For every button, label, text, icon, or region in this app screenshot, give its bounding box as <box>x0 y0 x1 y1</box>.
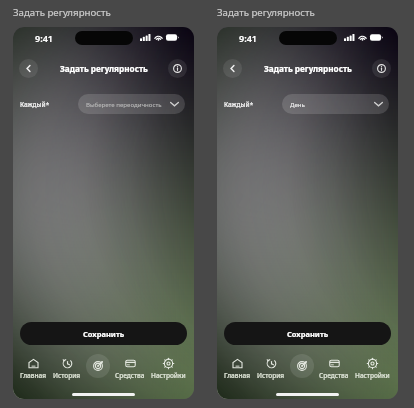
staticText: Средства <box>319 371 349 380</box>
button[interactable]: Главная <box>217 357 258 382</box>
staticText: Каждый* <box>20 100 50 109</box>
button[interactable]: Back <box>223 59 242 78</box>
staticText: Средства <box>115 371 145 380</box>
staticText: 9:41 <box>239 32 257 44</box>
button[interactable]: Сохранить <box>224 322 391 345</box>
staticText: День <box>290 100 305 108</box>
staticText: 9:41 <box>35 32 53 44</box>
staticText: Задать регулярность <box>217 6 315 19</box>
staticText: Задать регулярность <box>60 63 148 74</box>
staticText: Главная <box>20 371 47 380</box>
button[interactable]: Средства <box>313 357 355 382</box>
staticText: Главная <box>224 371 251 380</box>
button[interactable]: Goals <box>281 357 323 382</box>
button[interactable]: День <box>282 94 389 114</box>
button[interactable]: Настройки <box>351 357 393 382</box>
staticText: Выберете переодичность <box>86 100 162 108</box>
staticText: Каждый* <box>224 100 254 109</box>
staticText: Сохранить <box>287 329 329 339</box>
button[interactable]: Главная <box>13 357 54 382</box>
staticText: История <box>257 371 285 380</box>
staticText: Настройки <box>151 371 186 380</box>
staticText: История <box>53 371 81 380</box>
button[interactable]: Средства <box>109 357 151 382</box>
button[interactable]: Выберете переодичность <box>78 94 185 114</box>
button[interactable]: Information <box>372 59 391 78</box>
staticText: Настройки <box>355 371 390 380</box>
staticText: Сохранить <box>83 329 125 339</box>
button[interactable]: Back <box>19 59 38 78</box>
staticText: Задать регулярность <box>13 6 111 19</box>
button[interactable]: Information <box>168 59 187 78</box>
button[interactable]: История <box>46 357 88 382</box>
button[interactable]: Goals <box>77 357 119 382</box>
button[interactable]: История <box>250 357 292 382</box>
button[interactable]: Настройки <box>147 357 189 382</box>
button[interactable]: Сохранить <box>20 322 187 345</box>
staticText: Задать регулярность <box>264 63 352 74</box>
